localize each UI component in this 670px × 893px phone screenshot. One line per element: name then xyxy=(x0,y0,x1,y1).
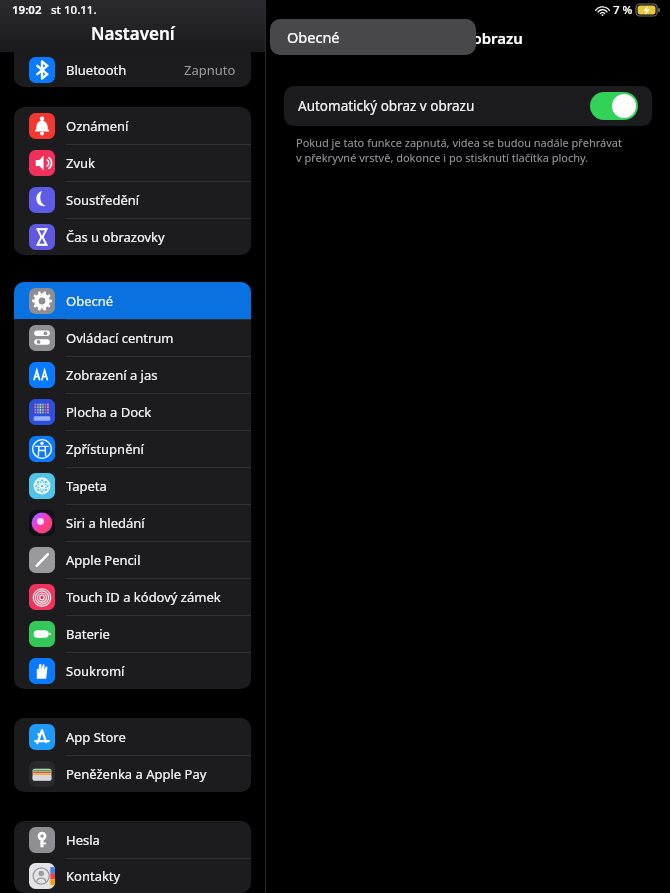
staticText: st 10.11. xyxy=(51,2,97,18)
staticText: Kontakty xyxy=(66,867,121,885)
staticText: Tapeta xyxy=(66,477,107,495)
button[interactable]: Siri a hledání xyxy=(14,504,251,541)
staticText: Zobrazení a jas xyxy=(66,366,158,384)
staticText: Automatický obraz v obrazu xyxy=(298,97,475,115)
staticText: Baterie xyxy=(66,625,110,643)
button[interactable]: Bluetooth xyxy=(14,52,251,87)
staticText: Soukromí xyxy=(66,662,125,680)
staticText: Pokud je tato funkce zapnutá, videa se b… xyxy=(296,135,622,165)
staticText: Hesla xyxy=(66,831,100,849)
button[interactable]: Plocha a Dock xyxy=(14,393,251,430)
staticText: Zvuk xyxy=(66,154,96,172)
staticText: Obecné xyxy=(66,292,114,310)
staticText: Obraz v obrazu xyxy=(413,28,523,48)
staticText: 19:02 xyxy=(12,2,42,18)
staticText: Zpřístupnění xyxy=(66,440,144,458)
staticText: Oznámení xyxy=(66,117,129,135)
button[interactable]: Tapeta xyxy=(14,467,251,504)
button[interactable]: Touch ID a kódový zámek xyxy=(14,578,251,615)
button[interactable]: Zobrazení a jas xyxy=(14,356,251,393)
button[interactable]: Oznámení xyxy=(14,107,251,144)
staticText: App Store xyxy=(66,728,126,746)
button[interactable]: Soukromí xyxy=(14,652,251,689)
staticText: Soustředění xyxy=(66,191,140,209)
staticText: Plocha a Dock xyxy=(66,403,152,421)
button[interactable]: Obecné xyxy=(270,19,476,55)
button[interactable]: Soustředění xyxy=(14,181,251,218)
staticText: Nastavení xyxy=(91,22,175,45)
button[interactable]: Zpřístupnění xyxy=(14,430,251,467)
button[interactable]: Ovládací centrum xyxy=(14,319,251,356)
button[interactable]: Automatický obraz v obrazu xyxy=(284,86,652,126)
staticText: Apple Pencil xyxy=(66,551,141,569)
staticText: Siri a hledání xyxy=(66,514,145,532)
staticText: Obecné xyxy=(287,27,340,47)
staticText: Bluetooth xyxy=(66,61,127,79)
button[interactable]: Peněženka a Apple Pay xyxy=(14,755,251,792)
button[interactable]: Obecné xyxy=(14,282,251,319)
button[interactable]: App Store xyxy=(14,718,251,755)
staticText: Čas u obrazovky xyxy=(66,228,165,246)
button[interactable]: Apple Pencil xyxy=(14,541,251,578)
button[interactable]: Čas u obrazovky xyxy=(14,218,251,255)
staticText: 7 % xyxy=(613,2,633,18)
staticText: Touch ID a kódový zámek xyxy=(66,588,221,606)
button[interactable]: Zvuk xyxy=(14,144,251,181)
button[interactable]: Automatický obraz v obrazu zapnuto xyxy=(590,92,638,120)
button[interactable]: Baterie xyxy=(14,615,251,652)
button[interactable]: Kontakty xyxy=(14,858,251,893)
staticText: Zapnuto xyxy=(184,61,236,79)
staticText: Ovládací centrum xyxy=(66,329,174,347)
button[interactable]: Hesla xyxy=(14,821,251,858)
staticText: Peněženka a Apple Pay xyxy=(66,765,207,783)
